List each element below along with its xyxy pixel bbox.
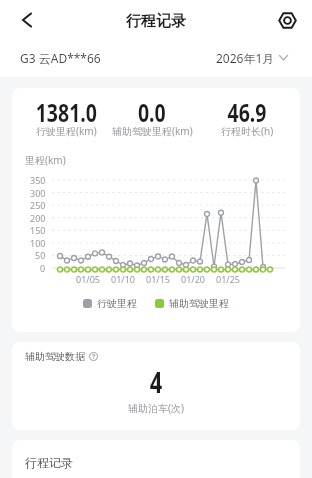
staticText: 行程记录 <box>126 12 186 31</box>
staticText: 里程(km) <box>25 153 66 167</box>
staticText: 行驶里程 <box>97 297 137 310</box>
staticText: 辅助驾驶里程(km) <box>112 124 193 138</box>
staticText: 4 <box>150 363 163 401</box>
button[interactable] <box>89 352 98 361</box>
staticText: G3 云AD***66 <box>20 50 101 66</box>
staticText: 2026年1月 <box>216 50 275 66</box>
button[interactable] <box>275 8 299 32</box>
staticText: 辅助泊车(次) <box>128 401 184 415</box>
staticText: 行驶里程(km) <box>36 124 97 138</box>
button[interactable] <box>14 8 38 32</box>
staticText: 行程记录 <box>25 455 73 470</box>
button[interactable]: 2026年1月 <box>216 50 288 66</box>
staticText: 辅助驾驶里程 <box>169 297 229 310</box>
staticText: 46.9 <box>227 95 266 129</box>
staticText: 行程时长(h) <box>221 124 274 138</box>
staticText: 0.0 <box>138 95 166 129</box>
staticText: 1381.0 <box>36 95 97 129</box>
staticText: 辅助驾驶数据 <box>25 350 85 363</box>
